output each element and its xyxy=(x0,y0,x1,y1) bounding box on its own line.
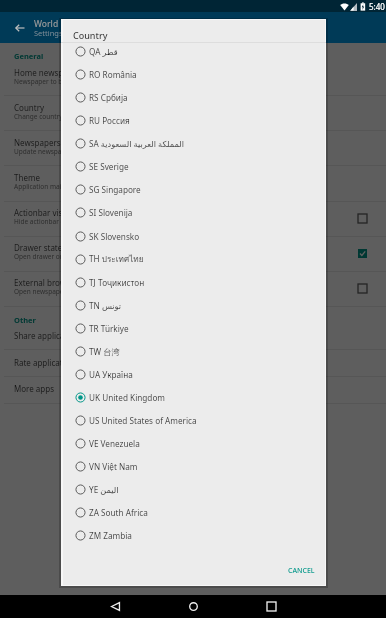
button[interactable]: SG Singapore xyxy=(61,178,326,201)
staticText: SE Sverige xyxy=(89,161,129,172)
button[interactable]: Home xyxy=(182,595,204,617)
button[interactable]: UA Україна xyxy=(61,363,326,386)
staticText: General xyxy=(14,51,44,61)
button[interactable] xyxy=(0,349,386,374)
staticText: TH ประเทศไทย xyxy=(89,253,144,266)
button[interactable] xyxy=(0,201,386,232)
staticText: Rate application xyxy=(14,357,75,368)
button[interactable]: Back xyxy=(104,595,126,617)
button[interactable]: TW 台湾 xyxy=(61,340,326,363)
button[interactable]: VN Việt Nam xyxy=(61,455,326,478)
button[interactable]: UK United Kingdom xyxy=(61,386,326,409)
button[interactable]: TR Türkiye xyxy=(61,317,326,340)
staticText: Change country xyxy=(14,112,63,121)
button[interactable]: VE Venezuela xyxy=(61,432,326,455)
staticText: CANCEL xyxy=(288,566,315,576)
button[interactable]: RU Россия xyxy=(61,109,326,132)
button[interactable]: Navigate up xyxy=(8,16,32,40)
staticText: Other xyxy=(14,315,36,325)
staticText: Update newspapers xyxy=(14,147,75,156)
button[interactable]: SI Slovenija xyxy=(61,201,326,224)
button[interactable]: ZM Zambia xyxy=(61,524,326,547)
staticText: 5:40 xyxy=(369,1,385,12)
staticText: Newspaper to be shown on home xyxy=(14,77,117,86)
staticText: SK Slovensko xyxy=(89,231,140,242)
staticText: VE Venezuela xyxy=(89,438,140,449)
staticText: More apps xyxy=(14,383,54,394)
staticText: US United States of America xyxy=(89,415,197,426)
button[interactable]: RS Србија xyxy=(61,86,326,109)
button[interactable]: TJ Тоҷикистон xyxy=(61,271,326,294)
button[interactable] xyxy=(0,96,386,127)
button[interactable]: US United States of America xyxy=(61,409,326,432)
button[interactable] xyxy=(0,375,386,400)
button[interactable] xyxy=(0,236,386,267)
staticText: ZA South Africa xyxy=(89,507,148,518)
staticText: UK United Kingdom xyxy=(89,392,165,403)
staticText: TN تونس xyxy=(89,300,122,311)
staticText: VN Việt Nam xyxy=(89,461,138,472)
button[interactable]: CANCEL xyxy=(278,559,325,583)
button[interactable]: SK Slovensko xyxy=(61,225,326,248)
staticText: TW 台湾 xyxy=(89,346,120,357)
button[interactable] xyxy=(0,322,386,347)
staticText: Hide actionbar on scroll xyxy=(14,217,87,226)
staticText: Actionbar visibility xyxy=(14,207,83,218)
staticText: SA المملكة العربية السعودية xyxy=(89,138,184,149)
staticText: Drawer state xyxy=(14,242,63,253)
button[interactable] xyxy=(0,166,386,197)
staticText: RU Россия xyxy=(89,115,130,126)
button[interactable]: TN تونس xyxy=(61,294,326,317)
button[interactable]: SE Sverige xyxy=(61,155,326,178)
staticText: Home newspapers xyxy=(14,67,85,78)
staticText: SG Singapore xyxy=(89,184,141,195)
staticText: QA قطر xyxy=(89,46,118,57)
staticText: Open newspapers in browser xyxy=(14,287,104,296)
staticText: TJ Тоҷикистон xyxy=(89,277,145,288)
staticText: Settings xyxy=(34,28,63,38)
button[interactable]: QA قطر xyxy=(61,40,326,63)
button[interactable]: TH ประเทศไทย xyxy=(61,248,326,271)
staticText: SI Slovenija xyxy=(89,207,133,218)
button[interactable] xyxy=(0,271,386,302)
staticText: Share application xyxy=(14,330,80,341)
staticText: RS Србија xyxy=(89,92,128,103)
staticText: ZM Zambia xyxy=(89,530,132,541)
staticText: External browser xyxy=(14,277,78,288)
button[interactable]: SA المملكة العربية السعودية xyxy=(61,132,326,155)
button[interactable]: Recent apps xyxy=(260,595,282,617)
staticText: Country xyxy=(14,102,45,113)
staticText: YE اليمن xyxy=(89,484,119,495)
staticText: Theme xyxy=(14,172,40,183)
staticText: Open drawer on start xyxy=(14,252,80,261)
button[interactable]: ZA South Africa xyxy=(61,501,326,524)
button[interactable]: RO România xyxy=(61,63,326,86)
staticText: RO România xyxy=(89,69,137,80)
staticText: Newspapers xyxy=(14,137,61,148)
staticText: Application main theme xyxy=(14,182,87,191)
button[interactable]: YE اليمن xyxy=(61,478,326,501)
staticText: UA Україна xyxy=(89,369,133,380)
button[interactable] xyxy=(0,61,386,92)
button[interactable] xyxy=(0,131,386,162)
staticText: Country xyxy=(73,29,108,41)
staticText: World Newspapers xyxy=(34,18,111,30)
staticText: TR Türkiye xyxy=(89,323,129,334)
